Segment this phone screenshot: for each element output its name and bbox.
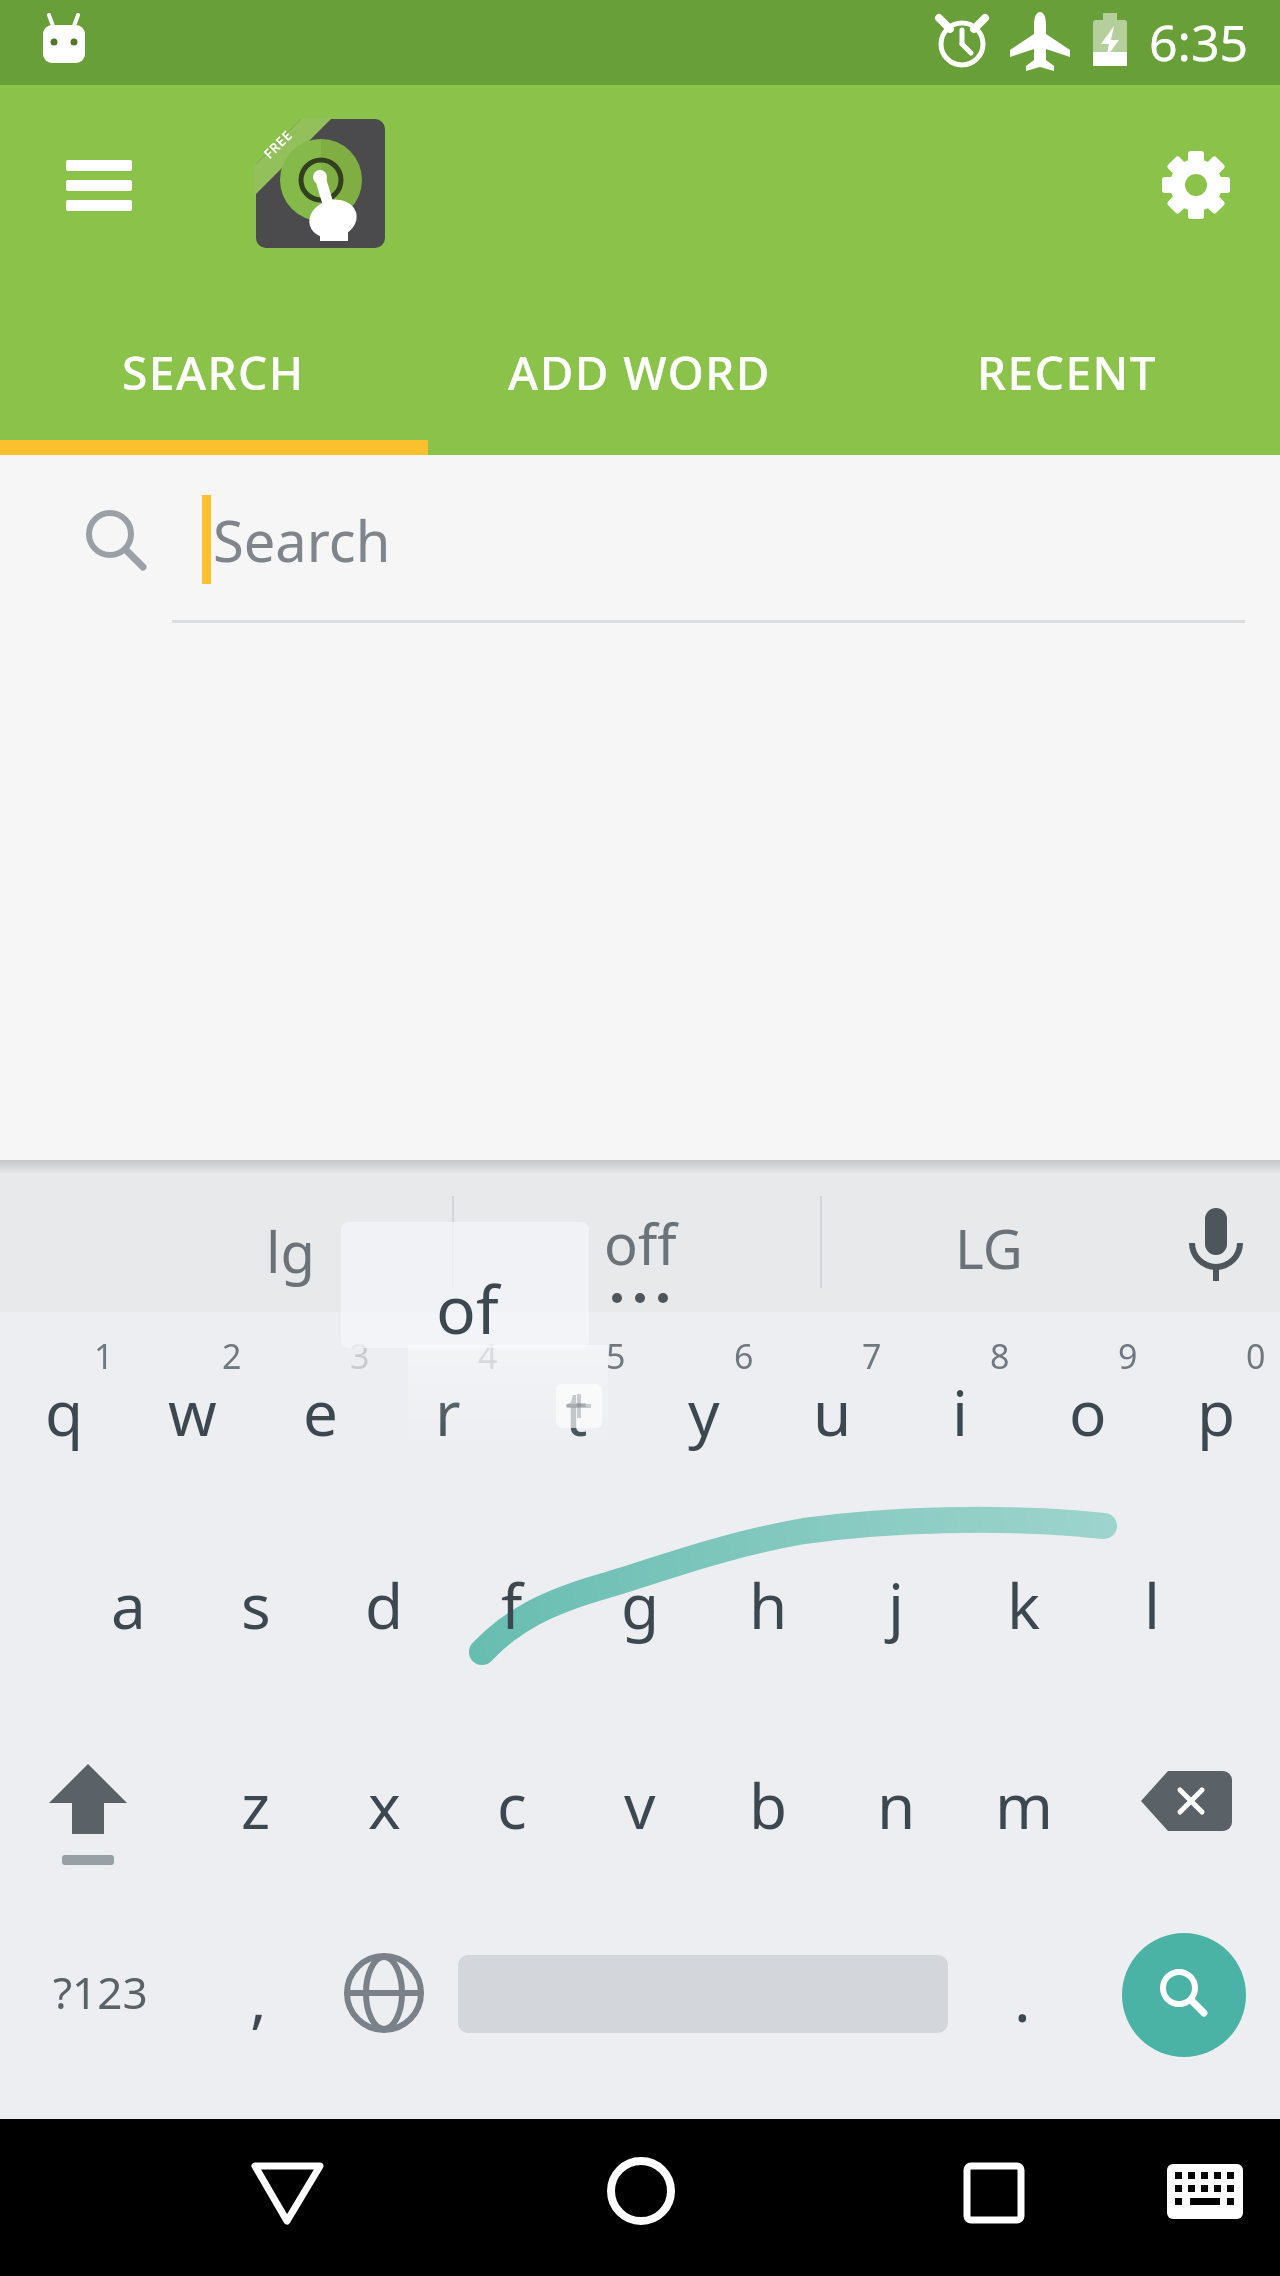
staticText: l	[1144, 1563, 1160, 1647]
staticText: LG	[955, 1210, 1023, 1285]
staticText: 7	[862, 1333, 882, 1379]
staticText: g	[621, 1563, 660, 1647]
staticText: i	[952, 1370, 968, 1454]
button[interactable]	[70, 480, 1245, 625]
staticText: y	[688, 1370, 720, 1454]
button[interactable]: h	[705, 1530, 831, 1680]
button[interactable]	[1140, 130, 1255, 240]
staticText: a	[111, 1563, 146, 1647]
staticText: Search	[213, 502, 391, 578]
staticText: 6:35	[1149, 8, 1249, 76]
button[interactable]: l	[1089, 1530, 1215, 1680]
staticText: d	[365, 1563, 404, 1647]
staticText: off	[604, 1205, 677, 1281]
button[interactable]	[1160, 1190, 1270, 1305]
button[interactable]: j	[833, 1530, 959, 1680]
button[interactable]: q	[1, 1347, 127, 1477]
staticText: s	[241, 1563, 271, 1647]
staticText: 0	[1246, 1333, 1266, 1379]
button[interactable]: z	[193, 1730, 319, 1880]
staticText: r	[435, 1370, 461, 1454]
button[interactable]: x	[321, 1730, 447, 1880]
button[interactable]: y	[641, 1347, 767, 1477]
button[interactable]: g	[577, 1530, 703, 1680]
staticText: FREE	[260, 126, 296, 162]
button[interactable]	[40, 140, 160, 250]
staticText: e	[303, 1370, 338, 1454]
staticText: 6	[734, 1333, 754, 1379]
staticText: u	[813, 1370, 852, 1454]
button[interactable]: i	[897, 1347, 1023, 1477]
button[interactable]	[330, 1930, 440, 2060]
staticText: t	[565, 1370, 588, 1454]
staticText: m	[995, 1763, 1053, 1847]
button[interactable]	[1120, 1740, 1260, 1890]
staticText: h	[749, 1563, 788, 1647]
button[interactable]	[30, 1740, 200, 1890]
button[interactable]: p	[1153, 1347, 1279, 1477]
staticText: 5	[606, 1333, 626, 1379]
staticText: 8	[990, 1333, 1010, 1379]
staticText: f	[501, 1563, 523, 1647]
button[interactable]	[853, 310, 1280, 455]
button[interactable]: LG	[839, 1177, 1139, 1317]
staticText: n	[877, 1763, 916, 1847]
staticText: SEARCH	[122, 341, 305, 404]
button[interactable]: e	[257, 1347, 383, 1477]
staticText: 2	[222, 1333, 242, 1379]
button[interactable]: o	[1025, 1347, 1151, 1477]
staticText: of	[436, 1263, 499, 1353]
staticText: c	[497, 1763, 527, 1847]
button[interactable]: m	[961, 1730, 1087, 1880]
button[interactable]: f	[449, 1530, 575, 1680]
staticText: 3	[350, 1333, 370, 1379]
staticText: x	[368, 1763, 401, 1847]
button[interactable]: n	[833, 1730, 959, 1880]
staticText: 9	[1118, 1333, 1138, 1379]
staticText: z	[241, 1763, 271, 1847]
button[interactable]: t	[513, 1347, 639, 1477]
button[interactable]: b	[705, 1730, 831, 1880]
staticText: j	[888, 1563, 904, 1647]
button[interactable]: k	[961, 1530, 1087, 1680]
button[interactable]: .	[967, 1928, 1077, 2068]
staticText: q	[45, 1370, 84, 1454]
button[interactable]: a	[65, 1530, 191, 1680]
staticText: lg	[266, 1213, 315, 1289]
staticText: RECENT	[977, 341, 1158, 404]
button[interactable]	[215, 2130, 360, 2255]
staticText: .	[1014, 1956, 1031, 2040]
button[interactable]: off	[490, 1173, 790, 1313]
staticText: w	[168, 1370, 217, 1454]
button[interactable]	[1150, 2130, 1265, 2255]
staticText: k	[1007, 1563, 1041, 1647]
button[interactable]	[1122, 1933, 1246, 2057]
staticText: b	[749, 1763, 788, 1847]
button[interactable]: ?123	[10, 1922, 190, 2062]
staticText: 1	[94, 1333, 114, 1379]
button[interactable]	[925, 2130, 1070, 2255]
button[interactable]	[0, 310, 427, 455]
button[interactable]: s	[193, 1530, 319, 1680]
button[interactable]: ,	[203, 1928, 313, 2068]
button[interactable]	[570, 2130, 715, 2255]
staticText: p	[1197, 1370, 1236, 1454]
staticText: v	[624, 1763, 656, 1847]
button[interactable]	[427, 310, 853, 455]
button[interactable]: d	[321, 1530, 447, 1680]
staticText: o	[1069, 1370, 1107, 1454]
button[interactable]: w	[129, 1347, 255, 1477]
staticText: ,	[250, 1956, 267, 2040]
button[interactable]: v	[577, 1730, 703, 1880]
button[interactable]: c	[449, 1730, 575, 1880]
staticText: 4	[478, 1333, 498, 1379]
staticText: ADD WORD	[508, 341, 771, 404]
button[interactable]: u	[769, 1347, 895, 1477]
staticText: ?123	[53, 1962, 148, 2022]
button[interactable]: r	[385, 1347, 511, 1477]
button[interactable]: lg	[140, 1181, 440, 1321]
